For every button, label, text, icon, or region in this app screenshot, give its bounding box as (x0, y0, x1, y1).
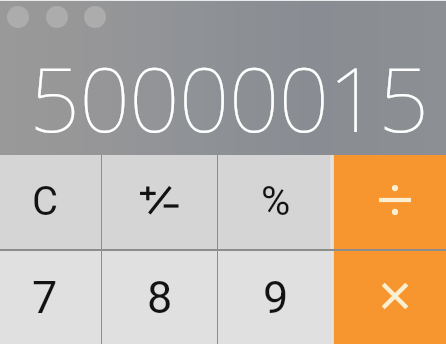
button[interactable] (334, 250, 446, 344)
staticText: 8 (147, 271, 173, 324)
other: Multiply (375, 276, 415, 316)
button[interactable] (218, 250, 333, 344)
button[interactable]: Minimise window (46, 6, 68, 28)
other: Divide (375, 180, 415, 220)
button[interactable]: Close window (7, 6, 29, 28)
button[interactable] (0, 250, 101, 344)
staticText: 50000015 (0, 37, 428, 158)
staticText: C (32, 178, 59, 225)
other: Toggle sign (136, 176, 184, 224)
button[interactable]: Zoom window (84, 6, 106, 28)
button[interactable] (218, 155, 333, 249)
button[interactable] (334, 155, 446, 249)
staticText: 9 (263, 271, 289, 324)
button[interactable] (102, 250, 217, 344)
staticText: % (261, 178, 291, 225)
staticText: 7 (32, 271, 58, 324)
button[interactable] (102, 155, 217, 249)
button[interactable] (0, 155, 101, 249)
